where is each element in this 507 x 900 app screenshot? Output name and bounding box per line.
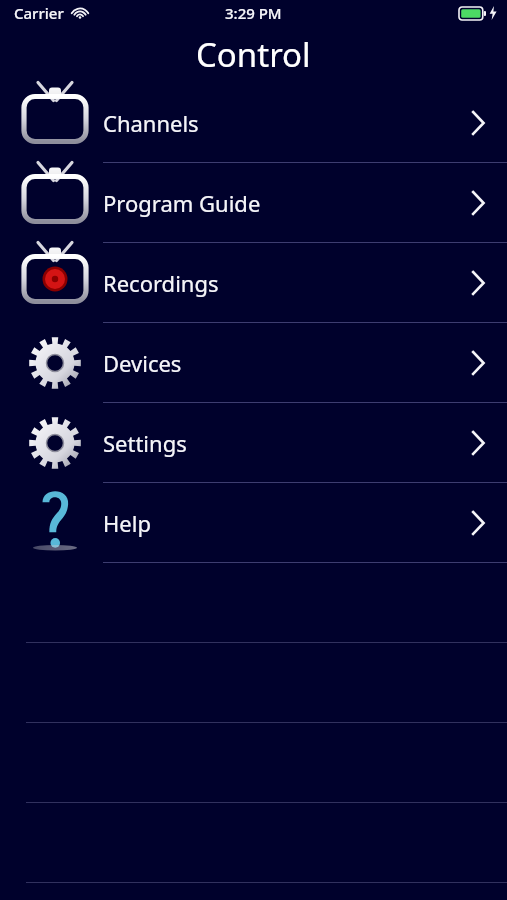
staticText: Carrier <box>14 3 64 23</box>
staticText: Control <box>196 32 311 77</box>
button[interactable]: Help <box>0 483 507 563</box>
staticText: 3:29 PM <box>225 3 282 23</box>
staticText: Settings <box>103 428 187 458</box>
staticText: Recordings <box>103 268 219 298</box>
staticText: Program Guide <box>103 188 261 218</box>
staticText: Help <box>103 508 151 538</box>
button[interactable]: Channels <box>0 83 507 163</box>
staticText: Channels <box>103 108 199 138</box>
staticText: Devices <box>103 348 182 378</box>
button[interactable]: Settings <box>0 403 507 483</box>
button[interactable]: Program Guide <box>0 163 507 243</box>
button[interactable]: Devices <box>0 323 507 403</box>
button[interactable]: Recordings <box>0 243 507 323</box>
